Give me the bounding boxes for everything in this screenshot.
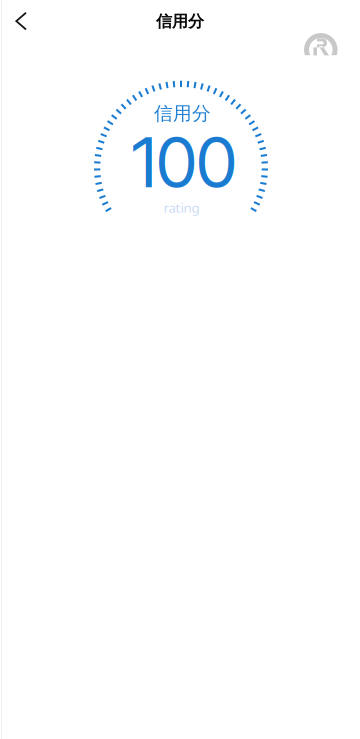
staticText: rating <box>163 199 199 216</box>
staticText: 信用分 <box>156 12 204 31</box>
button[interactable]: Back <box>0 1 43 41</box>
staticText: 100 <box>131 120 236 204</box>
staticText: 信用分 <box>154 102 211 125</box>
